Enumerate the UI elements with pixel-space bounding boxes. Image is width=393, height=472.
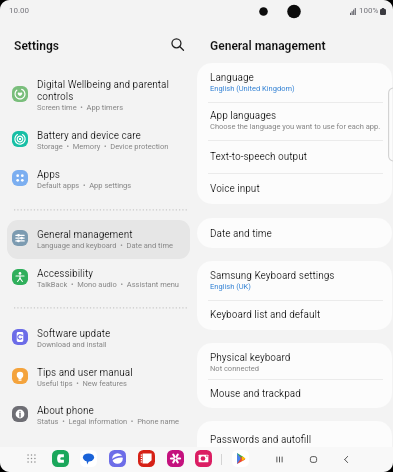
- staticText: About phone: [37, 405, 94, 417]
- staticText: Voice input: [210, 183, 260, 195]
- button[interactable]: [7, 220, 190, 259]
- button[interactable]: All apps: [23, 450, 40, 467]
- button[interactable]: [197, 218, 392, 248]
- staticText: Text-to-speech output: [210, 151, 307, 163]
- staticText: Choose the language you want to use for …: [210, 122, 381, 131]
- button[interactable]: [7, 396, 190, 435]
- staticText: English (United Kingdom): [210, 84, 295, 93]
- staticText: Language: [210, 72, 254, 84]
- staticText: controls: [37, 91, 74, 103]
- staticText: Date and time: [210, 228, 272, 240]
- button[interactable]: [197, 343, 392, 379]
- staticText: Download and install: [37, 340, 107, 349]
- button[interactable]: carrier: [52, 450, 69, 467]
- button[interactable]: recents: [270, 450, 288, 468]
- button[interactable]: play: [232, 450, 249, 467]
- staticText: General management: [37, 229, 133, 241]
- staticText: Keyboard list and default: [210, 309, 321, 321]
- button[interactable]: [197, 379, 392, 408]
- button[interactable]: insta: [195, 450, 212, 467]
- staticText: Software update: [37, 328, 111, 340]
- staticText: Language and keyboard • Date and time: [37, 241, 173, 250]
- button[interactable]: [7, 358, 190, 397]
- button[interactable]: [197, 63, 392, 102]
- staticText: General management: [210, 39, 326, 53]
- staticText: 100%: [359, 6, 379, 15]
- staticText: Screen time • App timers: [37, 103, 124, 112]
- staticText: Storage • Memory • Device protection: [37, 142, 169, 151]
- button[interactable]: gallery: [167, 450, 184, 467]
- staticText: Not connected: [210, 364, 259, 373]
- button[interactable]: [197, 261, 392, 300]
- button[interactable]: back: [337, 450, 355, 468]
- button[interactable]: Search: [166, 33, 188, 55]
- button[interactable]: [7, 160, 190, 199]
- staticText: Digital Wellbeing and parental: [37, 79, 169, 91]
- button[interactable]: [197, 421, 392, 472]
- staticText: Samsung Keyboard settings: [210, 270, 335, 282]
- button[interactable]: [197, 173, 392, 204]
- staticText: Accessibility: [37, 268, 93, 280]
- staticText: Default apps • App settings: [37, 181, 132, 190]
- staticText: Passwords and autofill: [210, 434, 312, 446]
- staticText: TalkBack • Mono audio • Assistant menu: [37, 280, 179, 289]
- button[interactable]: [7, 121, 190, 160]
- button[interactable]: messages: [80, 450, 97, 467]
- staticText: Tips and user manual: [37, 367, 133, 379]
- button[interactable]: internet: [109, 450, 126, 467]
- staticText: App languages: [210, 110, 277, 122]
- staticText: Apps: [37, 169, 60, 181]
- staticText: Mouse and trackpad: [210, 388, 301, 400]
- button[interactable]: [7, 259, 190, 298]
- staticText: Battery and device care: [37, 130, 141, 142]
- button[interactable]: [7, 319, 190, 358]
- button[interactable]: [197, 102, 392, 140]
- staticText: Physical keyboard: [210, 352, 291, 364]
- button[interactable]: [7, 70, 190, 109]
- staticText: Settings: [14, 39, 59, 53]
- button[interactable]: [197, 140, 392, 173]
- button[interactable]: home: [304, 450, 322, 468]
- button[interactable]: notes: [138, 450, 155, 467]
- staticText: Status • Legal information • Phone name: [37, 417, 180, 426]
- button[interactable]: [197, 300, 392, 330]
- staticText: English (UK): [210, 282, 251, 291]
- staticText: Useful tips • New features: [37, 379, 127, 388]
- staticText: 10.00: [9, 6, 30, 15]
